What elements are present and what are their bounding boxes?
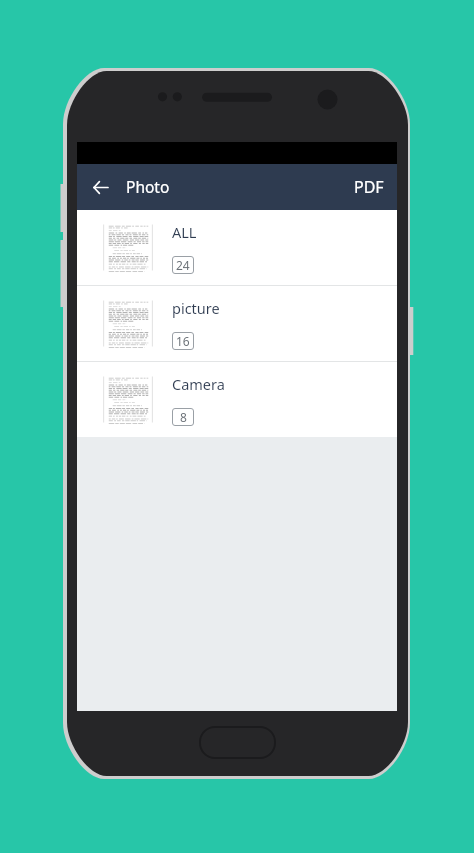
staticText: picture (172, 298, 220, 318)
button[interactable]: ALL (77, 210, 397, 285)
staticText: ALL (172, 222, 197, 242)
staticText: Camera (172, 374, 225, 394)
button[interactable]: Back (77, 164, 125, 210)
staticText: Photo (126, 176, 170, 197)
button[interactable]: Camera (77, 362, 397, 437)
staticText: 8 (180, 409, 187, 425)
staticText: PDF (354, 176, 384, 198)
staticText: 16 (176, 333, 190, 349)
button[interactable]: picture (77, 286, 397, 361)
staticText: 24 (176, 257, 190, 273)
button[interactable]: PDF (341, 164, 397, 210)
